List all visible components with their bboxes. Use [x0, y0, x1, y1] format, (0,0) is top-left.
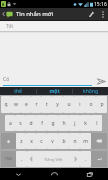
- button[interactable]: z: [16, 133, 26, 149]
- button[interactable]: Attach: [84, 8, 98, 20]
- button[interactable]: .: [80, 151, 91, 167]
- button[interactable]: Backspace: [91, 133, 107, 149]
- button[interactable]: Back: [0, 8, 15, 20]
- staticText: h: [62, 120, 66, 127]
- button[interactable]: u: [63, 96, 74, 113]
- button[interactable]: k: [80, 115, 91, 131]
- button[interactable]: Send: [94, 75, 108, 87]
- button[interactable]: Tới: [0, 21, 108, 33]
- button[interactable]: Có: [3, 76, 92, 86]
- staticText: e: [25, 101, 28, 108]
- button[interactable]: Shift: [1, 133, 16, 149]
- staticText: i: [79, 101, 81, 108]
- staticText: f: [41, 120, 43, 127]
- button[interactable]: p: [96, 96, 107, 113]
- staticText: ,: [21, 156, 23, 163]
- staticText: q: [4, 101, 8, 108]
- button[interactable]: b: [58, 133, 69, 149]
- staticText: o: [89, 101, 93, 108]
- staticText: n: [73, 138, 77, 145]
- button[interactable]: w: [11, 96, 21, 113]
- staticText: s: [19, 120, 22, 127]
- staticText: b: [62, 138, 66, 145]
- button[interactable]: thế: [0, 87, 36, 95]
- button[interactable]: r: [31, 96, 41, 113]
- staticText: j: [74, 120, 76, 127]
- staticText: d: [29, 120, 33, 127]
- button[interactable]: a: [5, 115, 15, 131]
- button[interactable]: ,: [16, 151, 27, 167]
- button[interactable]: ?123: [1, 151, 16, 167]
- button[interactable]: Home: [36, 168, 72, 180]
- staticText: m: [83, 138, 88, 145]
- button[interactable]: Back: [0, 168, 36, 180]
- button[interactable]: không: [73, 87, 108, 95]
- staticText: p: [100, 101, 104, 108]
- staticText: một: [49, 88, 60, 95]
- staticText: k: [84, 120, 87, 127]
- button[interactable]: Recent apps: [72, 168, 108, 180]
- staticText: 15:16: [94, 1, 107, 8]
- staticText: Tin nhắn mới: [16, 10, 84, 18]
- staticText: t: [46, 101, 48, 108]
- button[interactable]: q: [1, 96, 11, 113]
- staticText: 8: [2, 2, 5, 7]
- staticText: không: [83, 88, 98, 95]
- staticText: thế: [14, 88, 22, 95]
- staticText: x: [30, 138, 33, 145]
- staticText: c: [40, 138, 43, 145]
- button[interactable]: một: [37, 87, 72, 95]
- button[interactable]: l: [91, 115, 102, 131]
- button[interactable]: f: [36, 115, 47, 131]
- staticText: v: [51, 138, 54, 145]
- button[interactable]: t: [41, 96, 52, 113]
- button[interactable]: Tiếng Việt: [27, 151, 80, 167]
- staticText: a: [9, 120, 12, 127]
- staticText: Tới: [6, 23, 13, 30]
- button[interactable]: g: [47, 115, 58, 131]
- button[interactable]: n: [69, 133, 80, 149]
- button[interactable]: v: [47, 133, 58, 149]
- staticText: r: [35, 101, 38, 108]
- staticText: Có: [3, 76, 10, 83]
- staticText: u: [67, 101, 71, 108]
- button[interactable]: s: [15, 115, 25, 131]
- button[interactable]: j: [69, 115, 80, 131]
- staticText: ?123: [5, 157, 12, 161]
- button[interactable]: i: [74, 96, 85, 113]
- button[interactable]: o: [85, 96, 96, 113]
- button[interactable]: h: [58, 115, 69, 131]
- button[interactable]: y: [52, 96, 63, 113]
- staticText: g: [51, 120, 55, 127]
- staticText: .: [85, 156, 87, 163]
- staticText: Tiếng Việt: [44, 157, 63, 162]
- button[interactable]: m: [80, 133, 91, 149]
- button[interactable]: x: [26, 133, 36, 149]
- staticText: y: [56, 101, 59, 108]
- button[interactable]: More options: [98, 8, 108, 20]
- staticText: z: [20, 138, 23, 145]
- button[interactable]: c: [36, 133, 47, 149]
- button[interactable]: Enter: [91, 151, 107, 167]
- staticText: l: [96, 120, 98, 127]
- staticText: w: [14, 101, 18, 108]
- button[interactable]: e: [21, 96, 31, 113]
- button[interactable]: d: [25, 115, 36, 131]
